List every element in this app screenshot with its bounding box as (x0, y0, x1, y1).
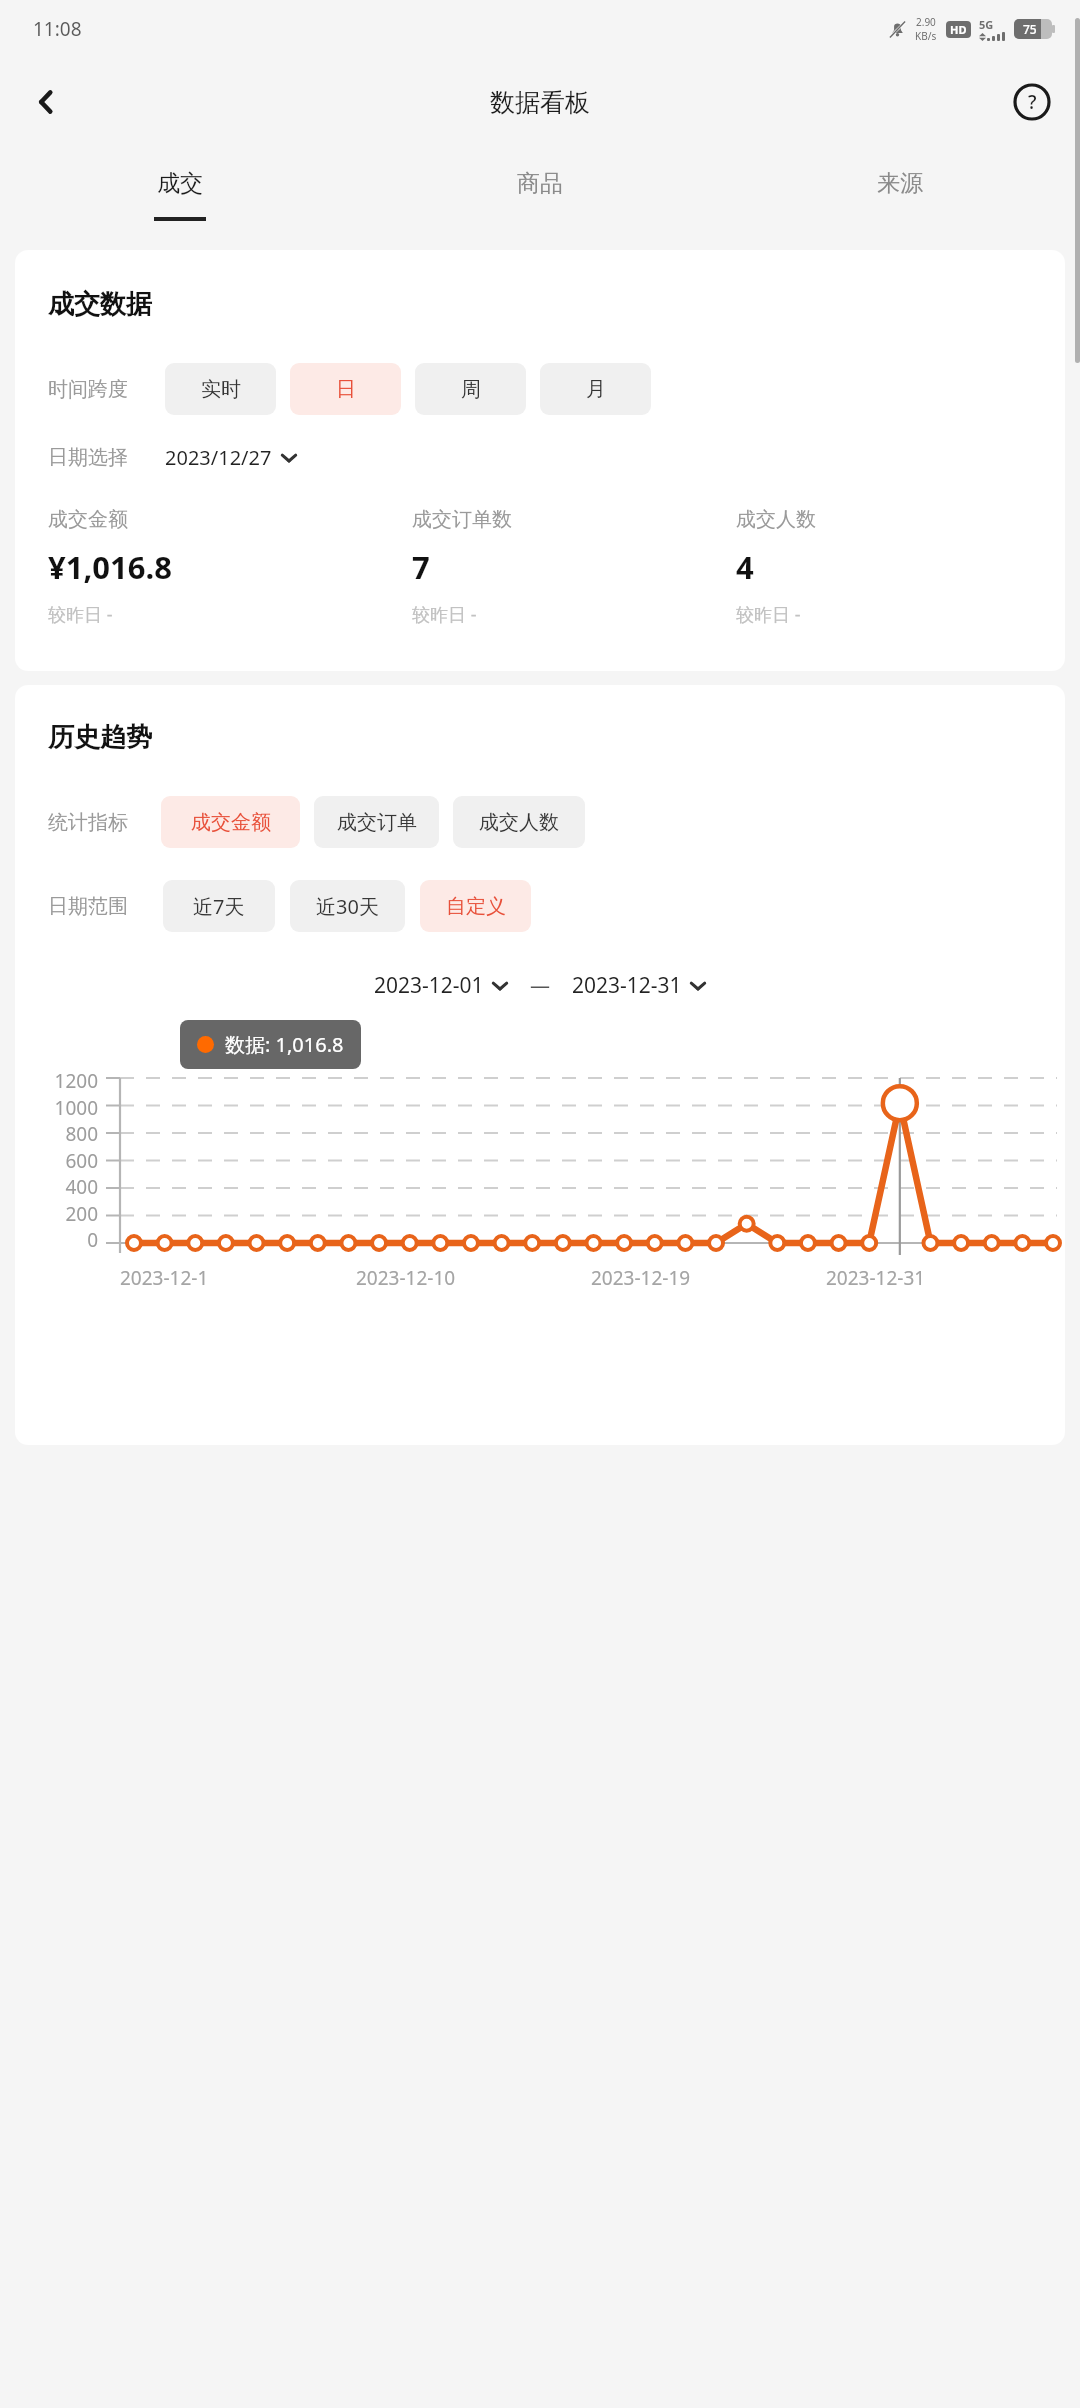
staticText: 800 (65, 1121, 98, 1147)
staticText: 历史趋势 (48, 721, 152, 754)
button[interactable]: 商品 (360, 146, 720, 244)
staticText: 成交人数 (479, 810, 559, 835)
button[interactable]: 2023-12-01 (370, 967, 512, 1004)
button[interactable]: 2023/12/27 (165, 440, 297, 475)
staticText: 月 (586, 377, 606, 402)
staticText: KB/s (915, 29, 937, 43)
staticText: 日 (336, 377, 356, 402)
button[interactable]: 2023-12-31 (568, 967, 710, 1004)
staticText: 75 (1023, 21, 1037, 37)
staticText: 较昨日 - (48, 602, 113, 627)
button[interactable]: 近30天 (290, 880, 405, 932)
staticText: ¥1,016.8 (48, 546, 172, 588)
staticText: 1200 (54, 1068, 98, 1094)
staticText: ? (1028, 89, 1037, 115)
staticText: 2023/12/27 (165, 444, 272, 471)
staticText: 2023-12-19 (591, 1265, 826, 1291)
staticText: 7 (412, 546, 430, 588)
staticText: 较昨日 - (736, 602, 801, 627)
staticText: 较昨日 - (412, 602, 477, 627)
staticText: 商品 (517, 169, 563, 198)
button[interactable]: 成交金额 (161, 796, 300, 848)
staticText: 2023-12-1 (120, 1265, 356, 1291)
staticText: 近7天 (193, 893, 245, 920)
staticText: 近30天 (316, 893, 379, 920)
staticText: 来源 (877, 169, 923, 198)
staticText: 成交订单数 (412, 507, 512, 532)
staticText: HD (950, 22, 967, 37)
staticText: 成交人数 (736, 507, 816, 532)
button[interactable]: 来源 (720, 146, 1080, 244)
staticText: 自定义 (446, 894, 506, 919)
staticText: 统计指标 (48, 810, 128, 835)
staticText: 日期选择 (48, 445, 128, 470)
staticText: 1000 (54, 1095, 98, 1121)
staticText: 周 (461, 377, 481, 402)
staticText: 成交金额 (191, 810, 271, 835)
staticText: 数据: 1,016.8 (225, 1031, 344, 1058)
staticText: 2023-12-01 (374, 971, 484, 1000)
button[interactable]: 周 (415, 363, 526, 415)
button[interactable]: 月 (540, 363, 651, 415)
button[interactable]: 自定义 (420, 880, 531, 932)
staticText: 成交数据 (48, 288, 152, 321)
staticText: 数据看板 (490, 87, 590, 118)
staticText: 成交金额 (48, 507, 128, 532)
staticText: 2.90 (916, 15, 936, 29)
button[interactable]: 实时 (165, 363, 276, 415)
staticText: 成交 (157, 169, 203, 198)
staticText: 2023-12-31 (572, 971, 682, 1000)
button[interactable]: Back (20, 76, 72, 128)
staticText: 0 (87, 1227, 98, 1253)
button[interactable]: 成交 (0, 146, 360, 244)
button[interactable]: Help (1010, 80, 1054, 124)
staticText: 时间跨度 (48, 377, 128, 402)
staticText: 实时 (201, 377, 241, 402)
button[interactable]: 成交订单 (314, 796, 439, 848)
button[interactable]: 日 (290, 363, 401, 415)
staticText: 200 (65, 1201, 98, 1227)
staticText: 5G (979, 17, 994, 32)
staticText: 4 (736, 546, 754, 588)
staticText: — (530, 972, 550, 999)
button[interactable]: 成交人数 (453, 796, 585, 848)
button[interactable]: 近7天 (163, 880, 275, 932)
staticText: 日期范围 (48, 894, 128, 919)
staticText: 2023-12-31 (826, 1265, 1061, 1291)
staticText: 400 (65, 1174, 98, 1200)
staticText: 成交订单 (337, 810, 417, 835)
staticText: 2023-12-10 (356, 1265, 591, 1291)
staticText: 600 (65, 1148, 98, 1174)
staticText: 11:08 (33, 16, 82, 42)
